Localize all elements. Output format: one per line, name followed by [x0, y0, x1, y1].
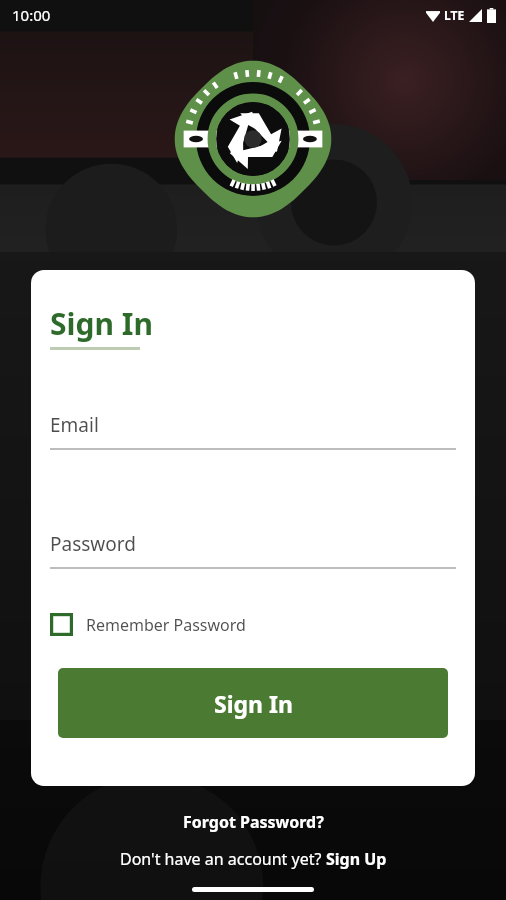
staticText: 10:00: [12, 5, 51, 25]
staticText: Password: [50, 531, 136, 557]
button[interactable]: Sign In: [58, 668, 448, 738]
staticText: Email: [50, 412, 99, 438]
button[interactable]: Remember Password: [50, 609, 256, 640]
staticText: Sign Up: [326, 848, 387, 870]
staticText: Sign In: [214, 688, 293, 719]
button[interactable]: Forgot Password?: [171, 808, 336, 836]
staticText: Sign In: [50, 303, 153, 344]
staticText: Remember Password: [86, 614, 246, 636]
button[interactable]: Don't have an account yet?: [108, 845, 399, 873]
button[interactable]: Password: [50, 531, 456, 569]
other: Denver Scrap Metal Recycling logo: [180, 66, 326, 212]
button[interactable]: Email: [50, 412, 456, 450]
staticText: Don't have an account yet?: [120, 848, 326, 870]
staticText: Forgot Password?: [183, 811, 324, 833]
staticText: LTE: [444, 7, 465, 23]
